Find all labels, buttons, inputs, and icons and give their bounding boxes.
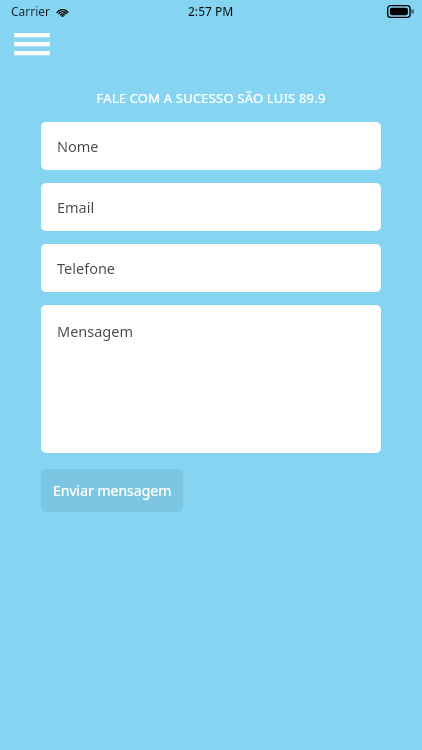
button[interactable]: Nome bbox=[41, 122, 381, 170]
staticText: Enviar mensagem bbox=[53, 481, 172, 500]
staticText: FALE COM A SUCESSO SÃO LUIS 89.9 bbox=[0, 89, 422, 107]
staticText: 2:57 PM bbox=[188, 3, 234, 19]
staticText: Carrier bbox=[11, 3, 51, 19]
staticText: Mensagem bbox=[57, 321, 134, 341]
button[interactable]: Open navigation menu bbox=[10, 29, 54, 57]
staticText: Nome bbox=[57, 136, 99, 156]
button[interactable]: Enviar mensagem bbox=[41, 469, 183, 512]
staticText: Telefone bbox=[57, 258, 116, 278]
staticText: Email bbox=[57, 197, 95, 217]
button[interactable]: Telefone bbox=[41, 244, 381, 292]
button[interactable]: Email bbox=[41, 183, 381, 231]
button[interactable]: Mensagem bbox=[41, 305, 381, 453]
